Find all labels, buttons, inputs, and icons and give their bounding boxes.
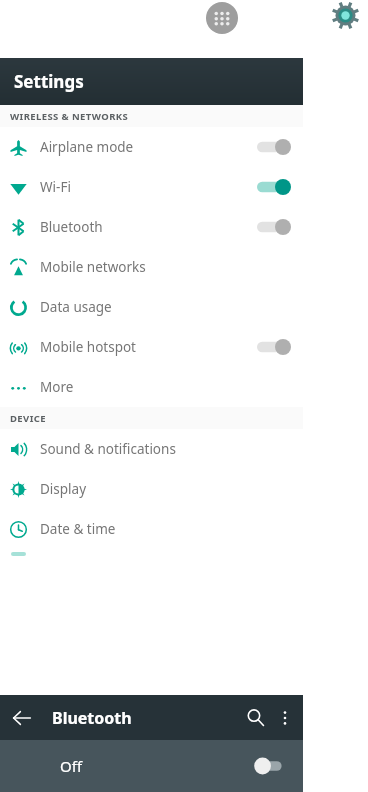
button[interactable]: Data usage xyxy=(0,287,303,327)
button[interactable]: More options xyxy=(279,709,291,727)
button[interactable]: Bluetooth xyxy=(0,207,303,247)
button[interactable]: More xyxy=(0,367,303,407)
staticText: More xyxy=(40,378,291,396)
staticText: Off xyxy=(60,756,251,776)
staticText: Sound & notifications xyxy=(40,440,291,458)
button[interactable]: Mobile networks xyxy=(0,247,303,287)
staticText: Settings xyxy=(14,70,84,93)
staticText: Mobile hotspot xyxy=(40,338,257,356)
staticText: Data usage xyxy=(40,298,291,316)
staticText: Date & time xyxy=(40,520,291,538)
button[interactable]: Search xyxy=(246,708,265,727)
staticText: Airplane mode xyxy=(40,138,257,156)
staticText: Bluetooth xyxy=(52,707,246,729)
button[interactable]: Off xyxy=(0,740,303,792)
staticText: Display xyxy=(40,480,291,498)
button[interactable]: All apps xyxy=(206,2,238,34)
button[interactable]: Date & time xyxy=(0,509,303,549)
button[interactable]: Sound & notifications xyxy=(0,429,303,469)
staticText: Wi-Fi xyxy=(40,178,257,196)
button[interactable]: Airplane mode xyxy=(0,127,303,167)
staticText: Mobile networks xyxy=(40,258,291,276)
button[interactable]: Mobile hotspot xyxy=(0,327,303,367)
button[interactable]: Wi-Fi xyxy=(0,167,303,207)
button[interactable]: Settings xyxy=(331,1,360,30)
button[interactable]: Back xyxy=(12,708,32,728)
staticText: Bluetooth xyxy=(40,218,257,236)
button[interactable]: Display xyxy=(0,469,303,509)
staticText: WIRELESS & NETWORKS xyxy=(10,110,129,123)
staticText: DEVICE xyxy=(10,412,46,425)
